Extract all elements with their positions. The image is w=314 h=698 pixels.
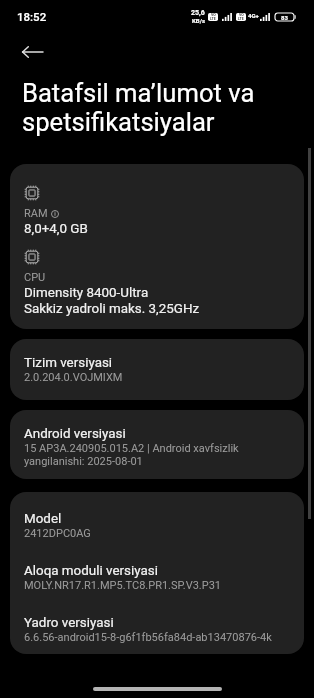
staticText: 15 AP3A.240905.015.A2 | Android xavfsizl… bbox=[24, 442, 239, 455]
button[interactable]: Tizim versiyasi bbox=[10, 339, 304, 400]
staticText: VO bbox=[211, 13, 216, 17]
staticText: 25,6 bbox=[191, 9, 205, 17]
button[interactable]: Yadro versiyasi bbox=[24, 615, 290, 644]
button[interactable]: Aloqa moduli versiyasi bbox=[24, 563, 290, 592]
button[interactable]: Model bbox=[24, 511, 290, 540]
button[interactable]: Back bbox=[12, 32, 52, 72]
staticText: 2412DPC0AG bbox=[24, 527, 91, 540]
staticText: CPU bbox=[24, 271, 46, 284]
staticText: Android versiyasi bbox=[24, 426, 126, 442]
staticText: 83 bbox=[281, 14, 288, 21]
staticText: Model bbox=[24, 511, 62, 527]
button[interactable]: Android versiyasi bbox=[10, 410, 304, 479]
staticText: Aloqa moduli versiyasi bbox=[24, 563, 158, 579]
staticText: Yadro versiyasi bbox=[24, 615, 114, 631]
staticText: 18:52 bbox=[17, 10, 47, 23]
staticText: MOLY.NR17.R1.MP5.TC8.PR1.SP.V3.P31 bbox=[24, 579, 222, 592]
staticText: 2.0.204.0.VOJMIXM bbox=[24, 371, 123, 384]
staticText: LTE bbox=[238, 17, 244, 21]
staticText: KB/s bbox=[192, 17, 205, 24]
staticText: Batafsil ma’lumot va spetsifikatsiyalar bbox=[22, 78, 255, 137]
staticText: LTE bbox=[210, 17, 216, 21]
button[interactable]: RAM bbox=[10, 164, 304, 329]
staticText: RAM bbox=[24, 207, 48, 220]
staticText: Tizim versiyasi bbox=[24, 355, 113, 371]
staticText: yangilanishi: 2025-08-01 bbox=[24, 455, 143, 468]
staticText: 6.6.56-android15-8-g6f1fb56fa84d-ab13470… bbox=[24, 631, 272, 644]
staticText: 8,0+4,0 GB bbox=[24, 221, 88, 237]
staticText: VO bbox=[239, 13, 244, 17]
staticText: Sakkiz yadroli maks. 3,25GHz bbox=[24, 301, 200, 317]
staticText: 4G+ bbox=[248, 12, 259, 19]
staticText: Dimensity 8400-Ultra bbox=[24, 285, 149, 301]
